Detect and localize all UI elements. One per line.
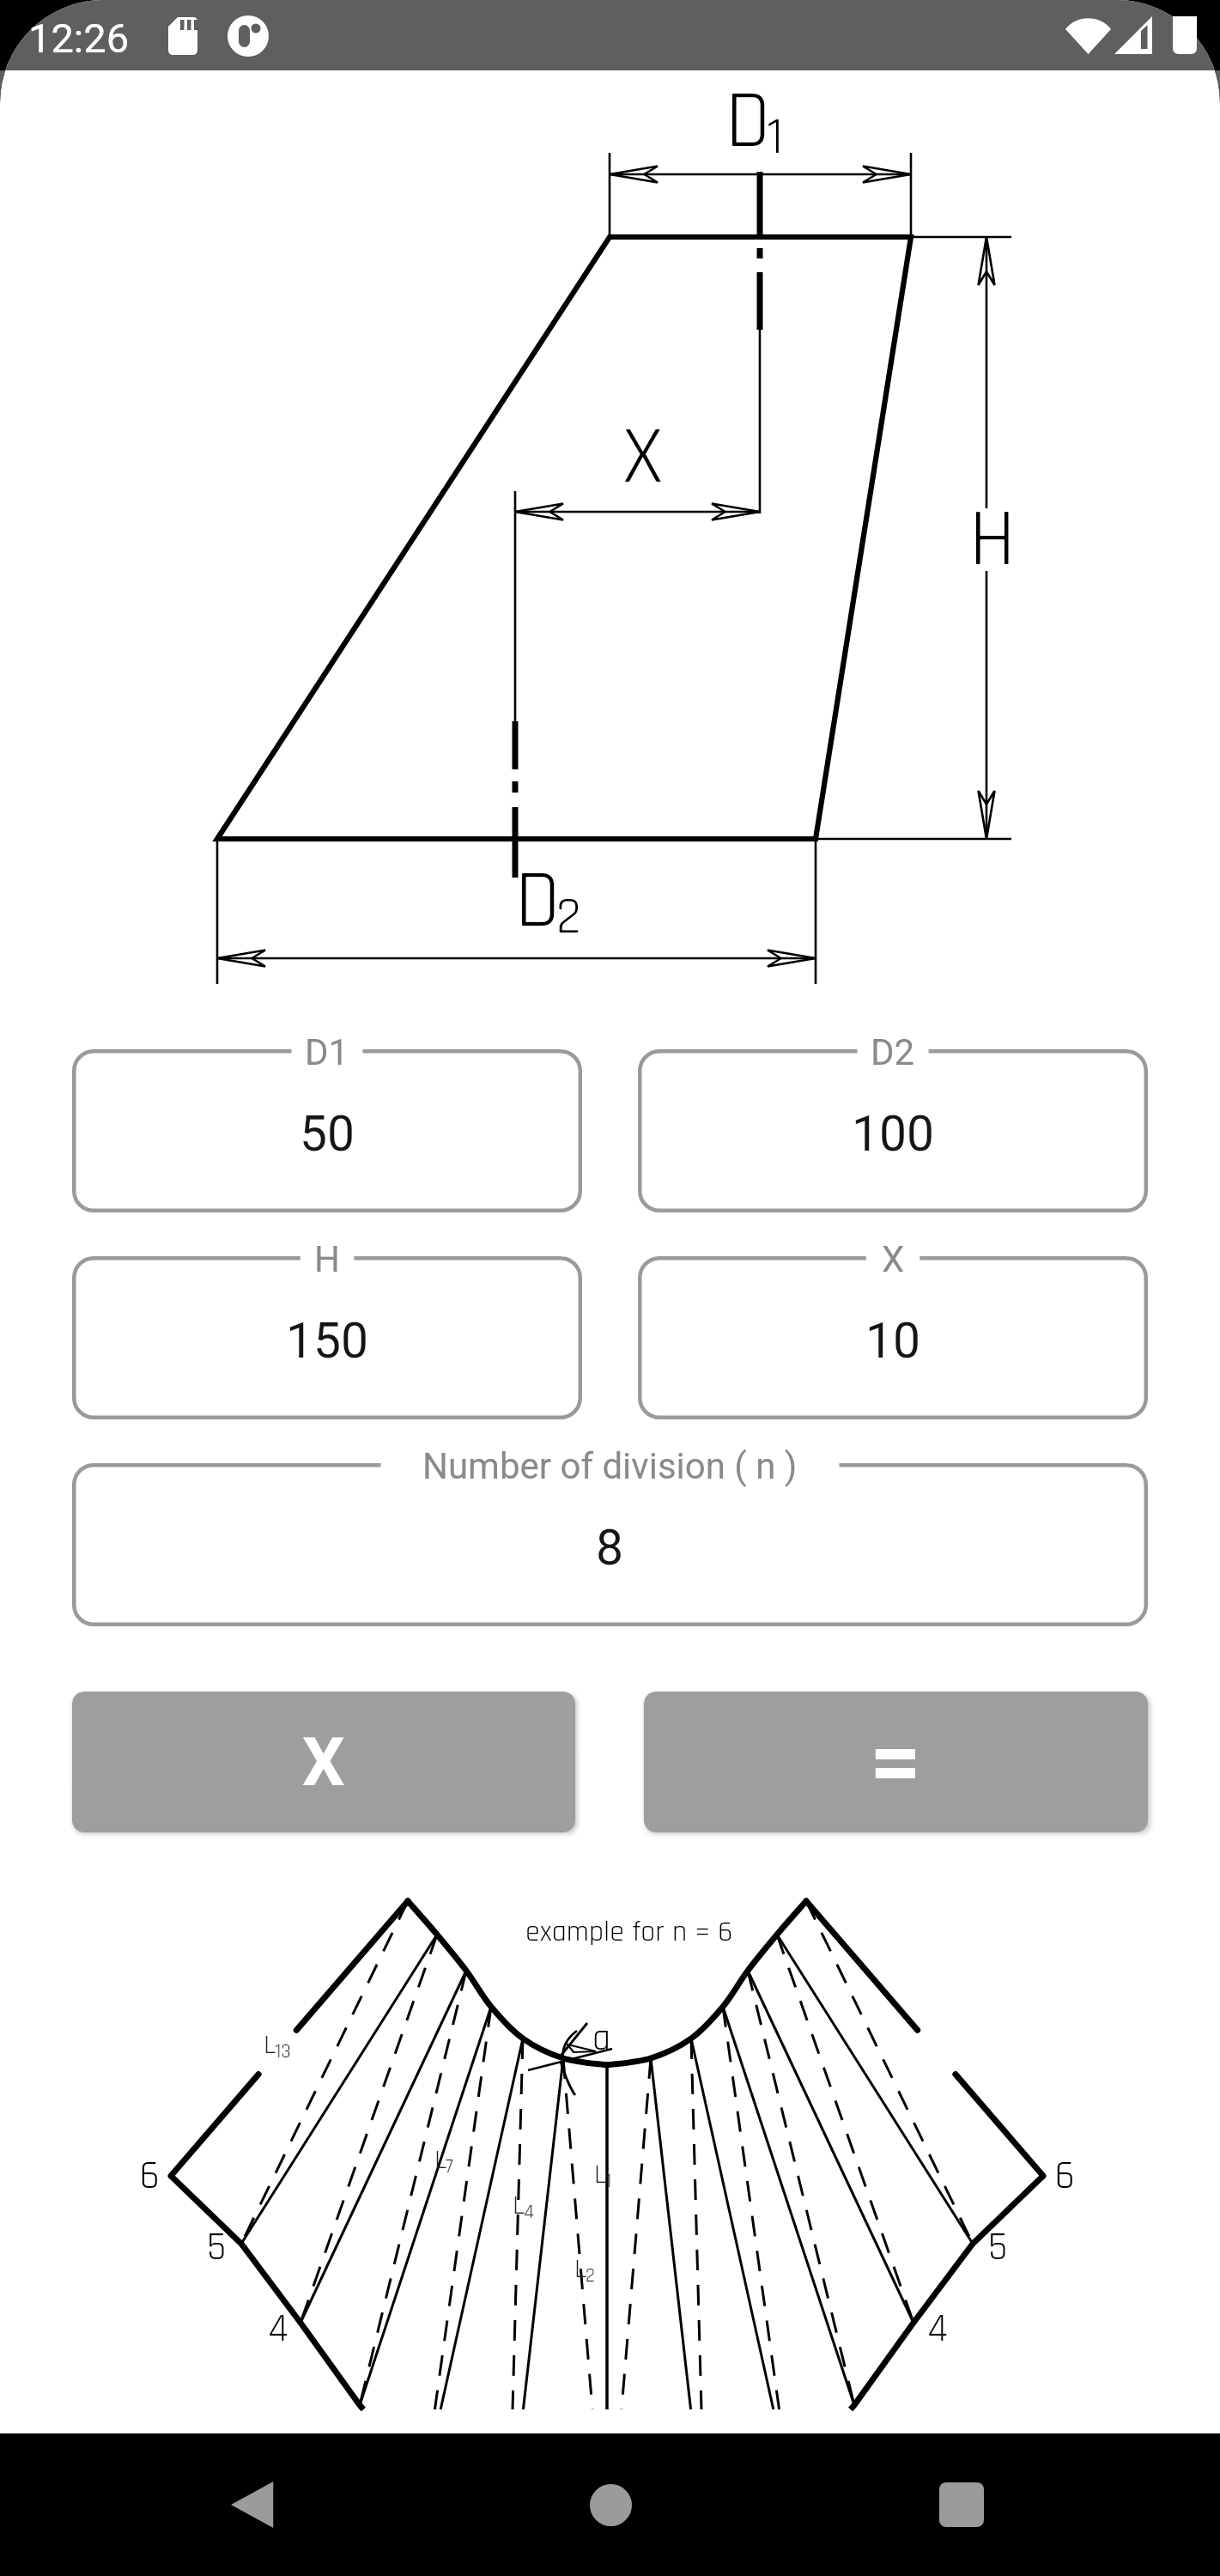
- staticText: L: [513, 2188, 525, 2223]
- staticText: example for n = 6: [525, 1913, 733, 1950]
- staticText: 1: [605, 2169, 612, 2194]
- staticText: H: [314, 1238, 340, 1280]
- staticText: D: [515, 851, 561, 954]
- staticText: 8: [596, 1519, 624, 1577]
- staticText: 1: [767, 105, 784, 171]
- staticText: X: [882, 1238, 905, 1280]
- button[interactable]: X: [638, 1256, 1148, 1419]
- staticText: Number of division ( n ): [422, 1445, 798, 1487]
- button[interactable]: H: [72, 1256, 582, 1419]
- button[interactable]: X: [72, 1692, 575, 1832]
- button[interactable]: D1: [72, 1049, 582, 1212]
- staticText: 6: [1055, 2151, 1075, 2202]
- staticText: 12:26: [28, 15, 130, 62]
- staticText: 5: [207, 2222, 227, 2273]
- staticText: 6: [140, 2151, 160, 2202]
- staticText: a: [592, 2016, 611, 2063]
- staticText: 150: [286, 1312, 369, 1370]
- staticText: L: [264, 2027, 276, 2063]
- button[interactable]: Recent apps: [910, 2453, 1013, 2556]
- staticText: H: [969, 489, 1016, 592]
- button[interactable]: Back: [203, 2453, 307, 2556]
- staticText: D2: [871, 1031, 915, 1073]
- button[interactable]: =: [644, 1692, 1148, 1832]
- staticText: L: [434, 2142, 447, 2178]
- staticText: 100: [852, 1105, 935, 1163]
- staticText: X: [302, 1723, 345, 1801]
- staticText: D: [725, 71, 771, 174]
- staticText: L: [594, 2157, 607, 2192]
- staticText: 2: [586, 2263, 595, 2288]
- staticText: 5: [988, 2222, 1008, 2273]
- button[interactable]: Number of division ( n ): [72, 1463, 1148, 1626]
- staticText: 4: [927, 2304, 948, 2354]
- staticText: 13: [275, 2039, 291, 2064]
- staticText: 4: [268, 2304, 288, 2354]
- staticText: 4: [524, 2200, 534, 2225]
- staticText: 10: [865, 1312, 921, 1370]
- staticText: L: [574, 2251, 587, 2287]
- staticText: X: [622, 407, 664, 510]
- staticText: =: [870, 1710, 922, 1815]
- button[interactable]: Home: [559, 2453, 662, 2556]
- staticText: 50: [300, 1105, 355, 1163]
- button[interactable]: D2: [638, 1049, 1148, 1212]
- staticText: 2: [556, 884, 581, 951]
- staticText: 7: [446, 2154, 453, 2179]
- staticText: D1: [305, 1031, 349, 1073]
